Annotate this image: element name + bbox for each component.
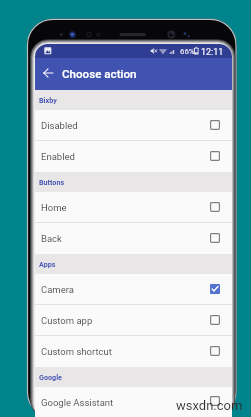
staticText: Custom shortcut [41,346,112,357]
staticText: Bixby [39,96,57,104]
button[interactable]: Enabled [35,141,232,172]
staticText: wsxdn.com [176,398,243,413]
staticText: Google [39,373,62,381]
staticText: Custom app [41,315,93,326]
staticText: 66% [180,47,195,56]
staticText: Apps [39,260,56,268]
button[interactable]: Home [35,192,232,223]
button[interactable]: Back [35,223,232,254]
staticText: Disabled [41,120,78,131]
staticText: Choose action [62,67,137,81]
button[interactable]: Google Assistant [35,387,232,417]
staticText: 12:11 [201,47,224,58]
staticText: Home [41,202,67,213]
button[interactable]: Disabled [35,110,232,141]
button[interactable]: Custom shortcut [35,336,232,367]
staticText: Enabled [41,151,75,162]
staticText: Google Assistant [41,397,114,408]
button[interactable]: Camera [35,274,232,305]
staticText: Camera [41,284,74,295]
staticText: Buttons [39,178,65,186]
staticText: Back [41,233,62,244]
button[interactable]: Navigate up [39,64,57,82]
button[interactable]: Custom app [35,305,232,336]
